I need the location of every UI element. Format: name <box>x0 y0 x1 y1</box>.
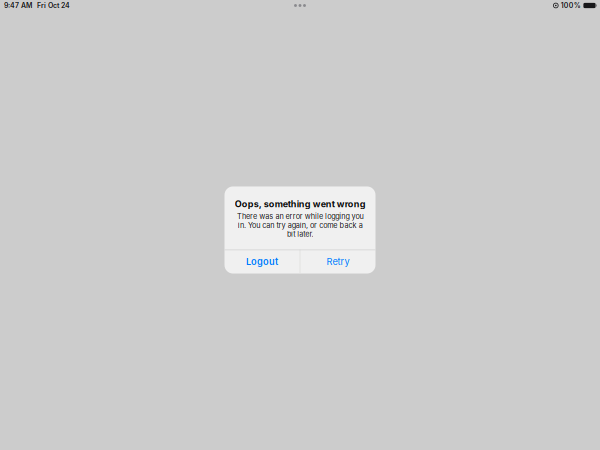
staticText: Fri Oct 24 <box>37 1 70 10</box>
staticText: Oops, something went wrong <box>234 198 365 209</box>
button[interactable]: Retry <box>300 249 375 273</box>
staticText: There was an error while logging you in.… <box>237 212 363 238</box>
button[interactable]: Logout <box>224 249 300 273</box>
staticText: Retry <box>326 256 349 267</box>
staticText: Logout <box>246 256 278 267</box>
staticText: 9:47 AM <box>4 1 32 10</box>
staticText: 100% <box>561 1 581 10</box>
button[interactable]: Multitasking Controls <box>288 2 312 9</box>
